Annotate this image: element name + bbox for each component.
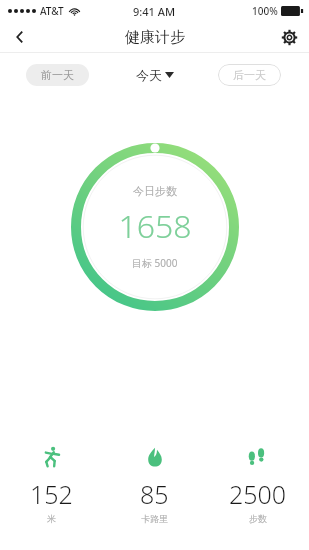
staticText: AT&T: [40, 4, 64, 18]
button[interactable]: Back: [0, 22, 40, 52]
staticText: 步数: [249, 513, 267, 524]
button[interactable]: 2500: [206, 445, 309, 524]
staticText: 健康计步: [125, 28, 185, 47]
staticText: 今天: [136, 67, 162, 83]
staticText: 2500: [229, 477, 287, 511]
staticText: 1658: [118, 204, 192, 248]
button[interactable]: Settings: [269, 22, 309, 52]
staticText: 米: [47, 513, 56, 524]
staticText: 100%: [252, 4, 278, 18]
button[interactable]: 今天: [136, 67, 174, 83]
staticText: 9:41 AM: [133, 4, 176, 19]
staticText: 152: [30, 477, 73, 511]
staticText: 今日步数: [133, 184, 177, 198]
staticText: 前一天: [41, 68, 74, 82]
staticText: 卡路里: [141, 513, 168, 524]
staticText: 85: [140, 477, 169, 511]
button[interactable]: 后一天: [218, 64, 281, 86]
staticText: 目标 5000: [132, 256, 178, 270]
button[interactable]: 152: [0, 445, 103, 524]
button[interactable]: 85: [103, 445, 206, 524]
button[interactable]: 前一天: [26, 64, 89, 86]
staticText: 后一天: [233, 68, 266, 82]
